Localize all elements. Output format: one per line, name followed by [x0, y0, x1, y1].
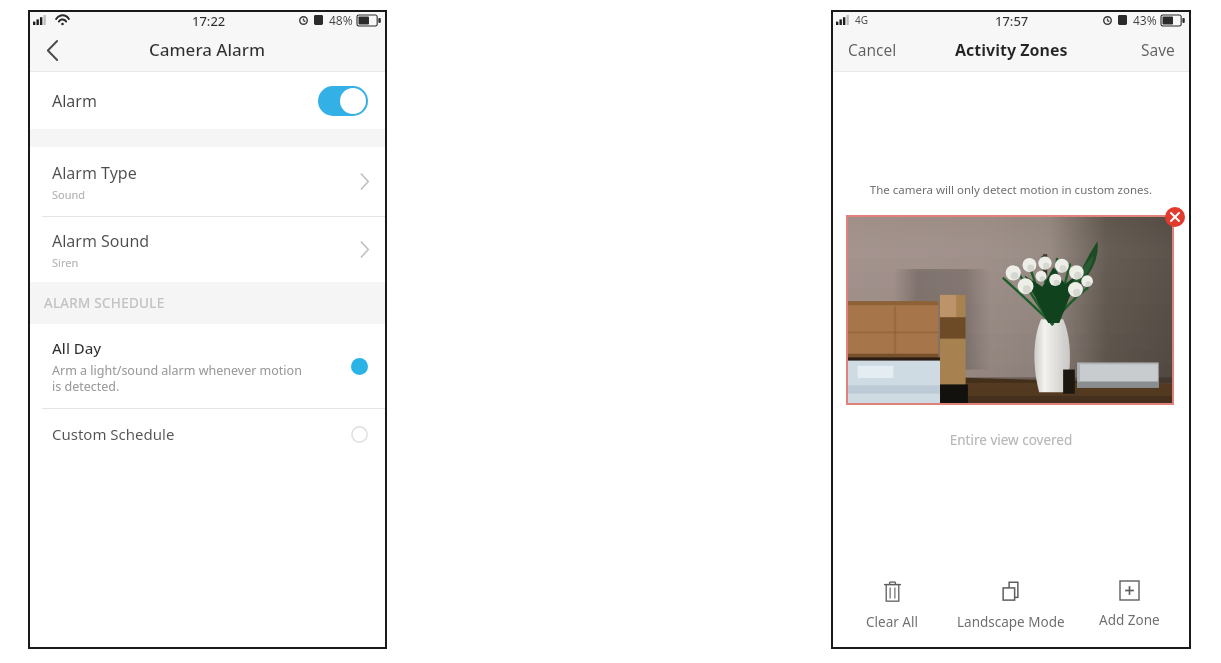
staticText: Add Zone [1099, 611, 1160, 629]
staticText: Alarm Sound [52, 230, 150, 252]
staticText: Arm a light/sound alarm whenever motion … [52, 362, 302, 394]
button[interactable]: Cancel [833, 28, 907, 71]
button[interactable]: Add Zone [1070, 563, 1189, 647]
staticText: 48% [329, 12, 353, 28]
staticText: Activity Zones [955, 39, 1068, 61]
staticText: 17:22 [192, 12, 226, 28]
button[interactable]: Alarm Type [30, 147, 385, 216]
button[interactable]: Alarm on/off [318, 86, 368, 116]
staticText: Alarm [52, 90, 97, 112]
staticText: Save [1141, 39, 1175, 60]
staticText: 43% [1133, 12, 1157, 28]
staticText: Alarm Type [52, 162, 137, 184]
staticText: 4G [855, 13, 868, 27]
button[interactable]: Clear All [833, 563, 951, 647]
staticText: Siren [52, 255, 79, 270]
staticText: All Day [52, 338, 102, 358]
button[interactable]: All Day [30, 324, 385, 408]
staticText: Cancel [848, 39, 897, 60]
button[interactable]: Save [1131, 28, 1189, 71]
button[interactable]: Custom Schedule [30, 409, 385, 459]
staticText: Entire view covered [833, 431, 1189, 449]
staticText: Camera Alarm [149, 38, 266, 61]
staticText: 17:57 [995, 12, 1029, 28]
staticText: The camera will only detect motion in cu… [833, 182, 1189, 198]
staticText: Landscape Mode [957, 613, 1065, 631]
staticText: Clear All [866, 613, 918, 631]
staticText: Sound [52, 187, 86, 202]
button[interactable]: Back [30, 30, 70, 70]
staticText: ALARM SCHEDULE [44, 294, 165, 312]
button[interactable]: Alarm Sound [30, 217, 385, 282]
button[interactable]: Activity zone [848, 217, 1172, 403]
staticText: Custom Schedule [52, 424, 175, 444]
button[interactable]: Alarm [30, 72, 385, 129]
button[interactable]: Landscape Mode [951, 563, 1070, 647]
button[interactable]: Remove zone [1165, 207, 1185, 227]
